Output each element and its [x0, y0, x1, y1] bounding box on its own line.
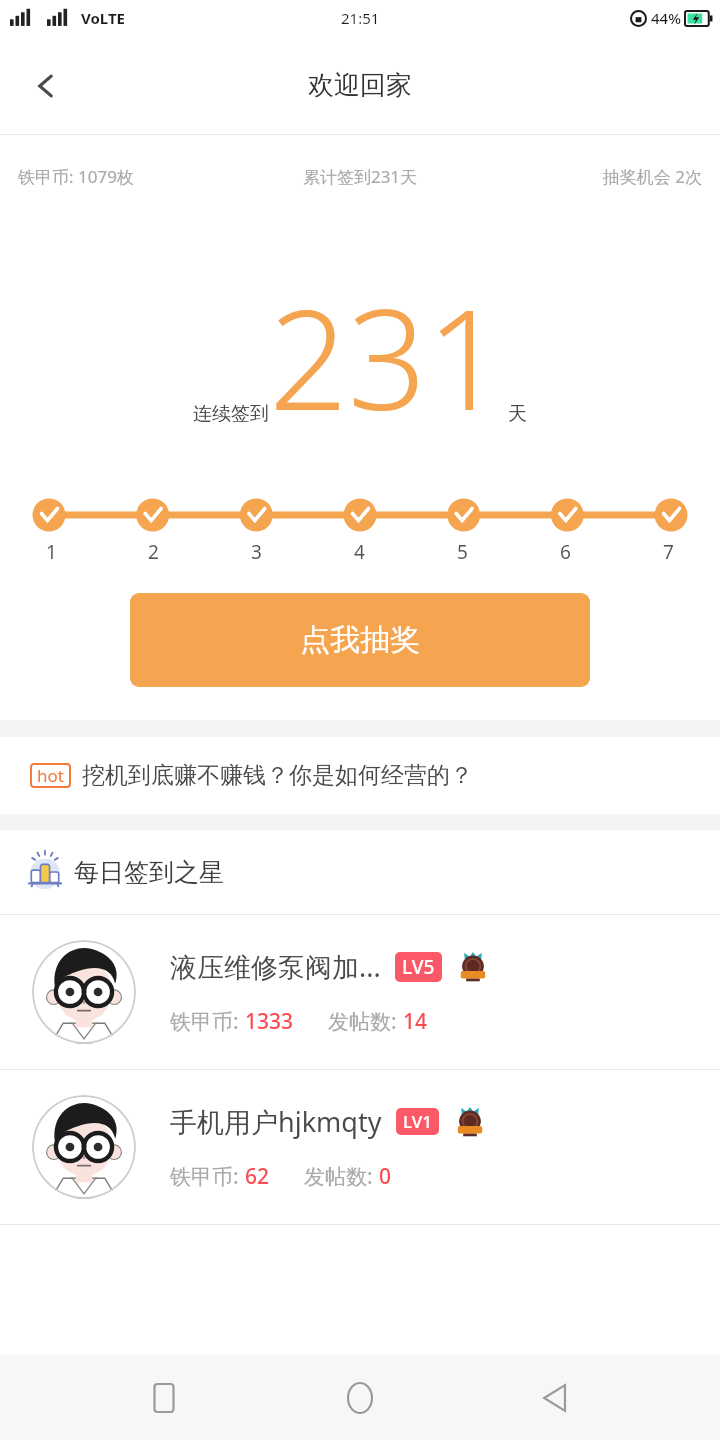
staticText: 2 [148, 539, 159, 565]
staticText: 7 [663, 539, 674, 565]
staticText: 231 [269, 262, 506, 450]
staticText: 21:51 [341, 8, 380, 28]
button[interactable]: Recent apps [132, 1366, 196, 1430]
staticText: LV1 [403, 1110, 432, 1133]
staticText: 14 [403, 1007, 428, 1036]
staticText: hot [37, 764, 64, 787]
staticText: 每日签到之星 [74, 857, 224, 888]
staticText: 0 [379, 1162, 392, 1191]
button[interactable]: Home [328, 1366, 392, 1430]
staticText: 手机用户hjkmqty [170, 1103, 382, 1140]
staticText: 6 [560, 539, 571, 565]
button[interactable]: hot [0, 737, 720, 814]
staticText: 铁甲币: [170, 1162, 245, 1191]
staticText: 发帖数: [328, 1007, 403, 1036]
staticText: 连续签到 [193, 402, 269, 426]
button[interactable]: 手机用户hjkmqty [0, 1070, 720, 1224]
staticText: 天 [508, 402, 527, 426]
staticText: 铁甲币: [170, 1007, 245, 1036]
staticText: 3 [251, 539, 262, 565]
staticText: 5 [457, 539, 468, 565]
staticText: 铁甲币: 1079枚 [18, 165, 246, 188]
staticText: 1333 [245, 1007, 294, 1036]
button[interactable]: Back [18, 58, 74, 114]
button[interactable]: Back [524, 1366, 588, 1430]
staticText: 挖机到底赚不赚钱？你是如何经营的？ [82, 761, 473, 790]
staticText: 抽奖机会 2次 [474, 165, 702, 188]
staticText: 发帖数: [304, 1162, 379, 1191]
staticText: VoLTE [81, 8, 125, 28]
staticText: 44% [651, 8, 681, 28]
staticText: 4 [354, 539, 365, 565]
button[interactable]: 点我抽奖 [130, 593, 590, 687]
staticText: 液压维修泵阀加... [170, 948, 381, 985]
staticText: LV5 [402, 954, 435, 980]
button[interactable]: 液压维修泵阀加... [0, 915, 720, 1069]
staticText: 累计签到231天 [246, 165, 474, 188]
staticText: 欢迎回家 [308, 69, 412, 102]
staticText: 62 [245, 1162, 270, 1191]
staticText: 1 [46, 539, 57, 565]
staticText: 点我抽奖 [300, 621, 420, 659]
